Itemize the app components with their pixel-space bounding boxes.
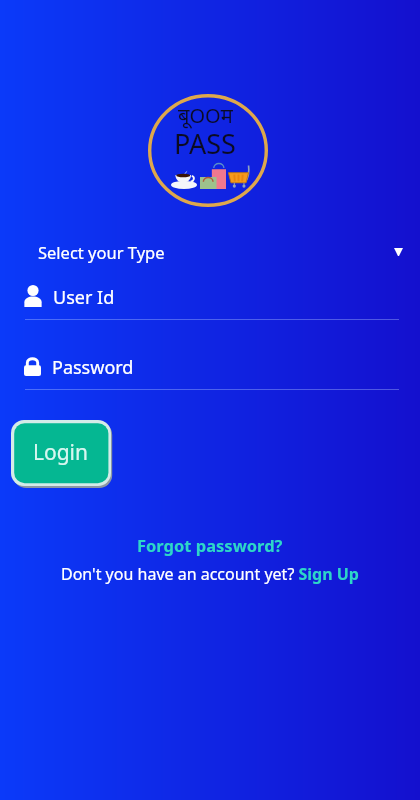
staticText: Login <box>33 438 89 467</box>
staticText: PASS <box>174 125 236 162</box>
staticText: Forgot password? <box>137 534 283 556</box>
staticText: बूOOम <box>178 102 233 129</box>
staticText: Password <box>52 355 134 377</box>
button[interactable]: User Id <box>0 285 420 320</box>
staticText: Don't you have an account yet? Sign Up <box>61 563 359 585</box>
button[interactable]: Select your Type <box>0 236 420 268</box>
button[interactable]: Don't you have an account yet? Sign Up <box>55 561 365 587</box>
button[interactable]: Forgot password? <box>129 531 291 559</box>
button[interactable]: Password <box>0 355 420 390</box>
button[interactable]: Login <box>11 419 112 488</box>
staticText: User Id <box>53 285 115 307</box>
staticText: Select your Type <box>38 241 165 263</box>
